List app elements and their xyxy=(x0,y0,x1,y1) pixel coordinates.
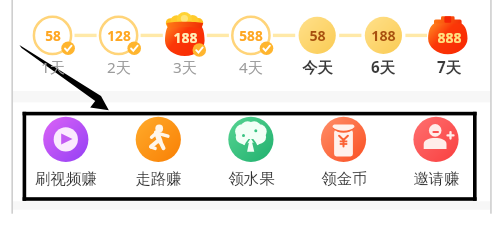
staticText: 188 xyxy=(371,26,396,45)
staticText: 邀请赚 xyxy=(413,169,460,188)
staticText: 128 xyxy=(107,26,131,45)
staticText: 188 xyxy=(173,28,198,47)
staticText: 2天 xyxy=(107,57,131,77)
staticText: 1天 xyxy=(41,57,65,77)
button[interactable]: Invite friends to earn xyxy=(392,114,480,198)
staticText: 58 xyxy=(45,26,61,45)
staticText: 6天 xyxy=(371,57,395,77)
staticText: 4天 xyxy=(239,57,263,77)
button[interactable]: Collect fruit xyxy=(207,114,295,198)
staticText: 7天 xyxy=(437,57,461,77)
staticText: 领水果 xyxy=(228,169,275,188)
staticText: 888 xyxy=(437,28,462,47)
staticText: 刷视频赚 xyxy=(35,169,97,188)
staticText: 走路赚 xyxy=(135,169,182,188)
staticText: 领金币 xyxy=(321,169,368,188)
button[interactable]: Watch videos to earn xyxy=(22,114,110,198)
button[interactable]: Collect coins xyxy=(300,114,388,198)
staticText: 今天 xyxy=(302,58,333,77)
staticText: 588 xyxy=(239,26,263,45)
staticText: 3天 xyxy=(173,57,197,77)
staticText: 58 xyxy=(309,26,326,45)
button[interactable]: Walk to earn xyxy=(114,114,202,198)
